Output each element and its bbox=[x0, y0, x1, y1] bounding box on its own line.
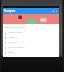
button[interactable]: Search bbox=[52, 10, 55, 13]
staticText: Recipes bbox=[4, 9, 16, 13]
button[interactable]: 1 tsp salt bbox=[3, 40, 59, 45]
button[interactable]: Recipes bbox=[3, 8, 59, 14]
staticText: water bbox=[8, 51, 14, 54]
button[interactable] bbox=[3, 14, 59, 24]
button[interactable]: More options bbox=[55, 10, 58, 13]
staticText: Homemade Pasta bbox=[4, 25, 25, 28]
button[interactable]: 3 eggs bbox=[3, 35, 59, 40]
staticText: 3 eggs bbox=[8, 36, 15, 39]
button[interactable]: 2 cups of flour bbox=[3, 30, 59, 35]
staticText: 2 tbsp of olive oil bbox=[8, 46, 25, 49]
staticText: 2 cups of flour bbox=[8, 31, 23, 34]
button[interactable]: water bbox=[3, 50, 59, 55]
staticText: 1 tsp salt bbox=[8, 41, 17, 44]
button[interactable]: 2 tbsp of olive oil bbox=[3, 45, 59, 50]
